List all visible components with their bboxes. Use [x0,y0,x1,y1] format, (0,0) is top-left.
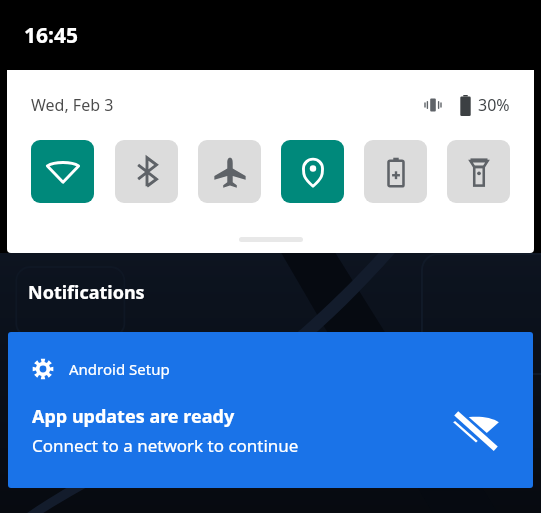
button[interactable]: Android Setup [8,332,533,488]
button[interactable]: Wi-Fi [31,140,94,203]
staticText: 30% [478,94,510,116]
button[interactable]: Battery saver [364,140,427,203]
staticText: App updates are ready [32,404,235,429]
staticText: Connect to a network to continue [32,434,299,457]
staticText: Wed, Feb 3 [31,94,114,116]
staticText: 16:45 [24,21,78,50]
button[interactable]: Flashlight [447,140,510,203]
button[interactable]: Location [281,140,344,203]
button[interactable]: Airplane mode [198,140,261,203]
staticText: Android Setup [69,359,170,379]
staticText: Notifications [28,280,145,305]
button[interactable]: Bluetooth [115,140,178,203]
